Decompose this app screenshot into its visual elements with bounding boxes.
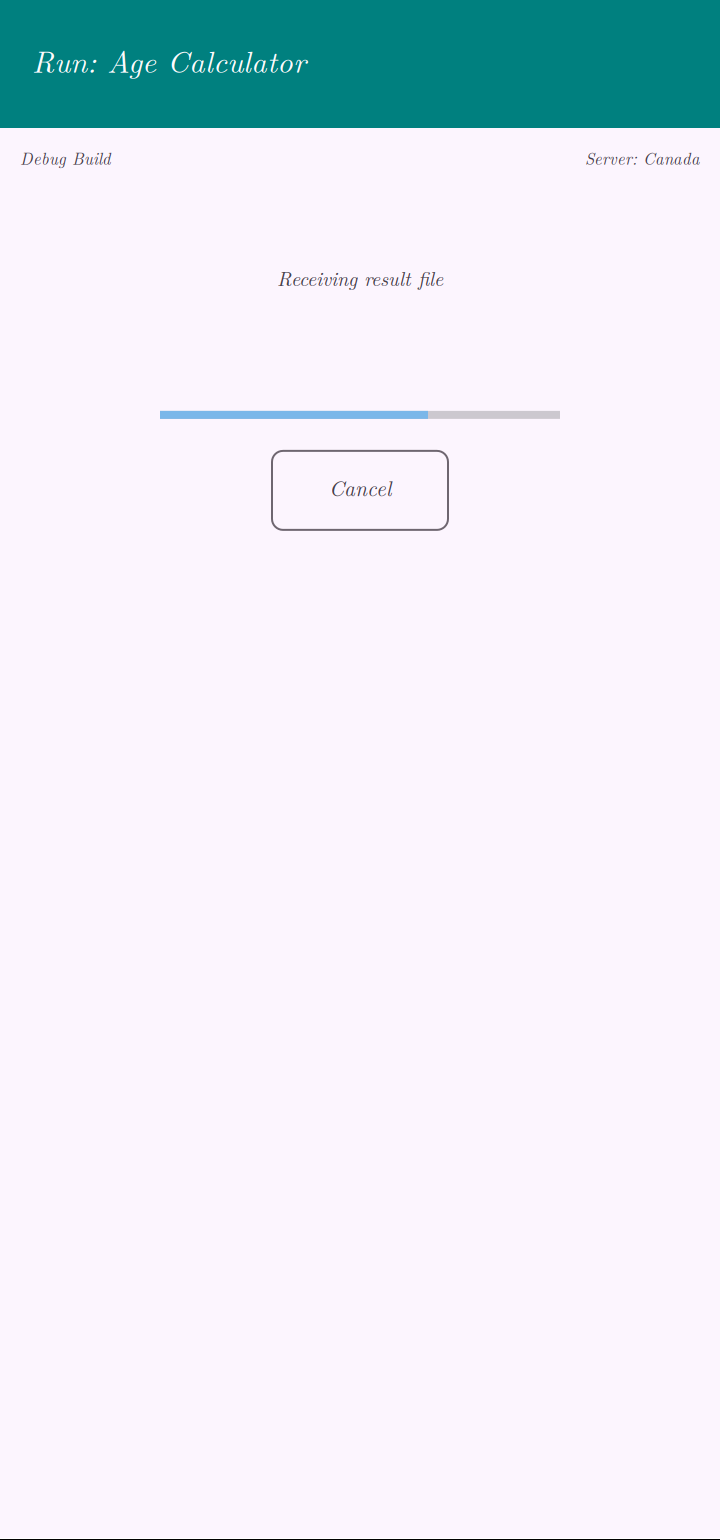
staticText: Receiving result file — [277, 264, 443, 292]
button[interactable]: Cancel — [272, 451, 448, 530]
staticText: Debug Build — [20, 146, 111, 170]
staticText: Run: Age Calculator — [32, 38, 306, 82]
staticText: Server: Canada — [585, 146, 700, 170]
staticText: Cancel — [329, 472, 391, 502]
